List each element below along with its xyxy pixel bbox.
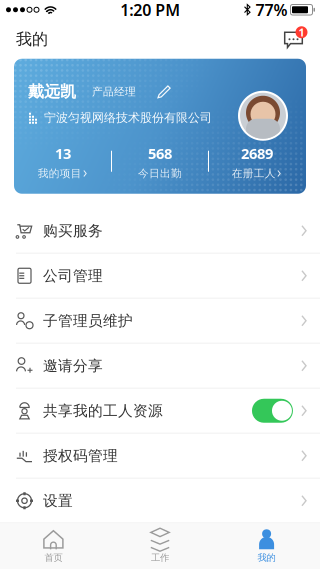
staticText: 1:20 PM [120, 0, 180, 20]
staticText: 1 [298, 25, 304, 39]
button[interactable]: 购买服务 [0, 209, 320, 253]
button[interactable]: 子管理员维护 [0, 299, 320, 343]
staticText: 我的项目 [38, 167, 82, 180]
staticText: 2689 [241, 143, 273, 163]
staticText: 共享我的工人资源 [43, 402, 163, 420]
button[interactable]: 邀请分享 [0, 344, 320, 388]
staticText: 邀请分享 [43, 357, 103, 375]
staticText: 产品经理 [92, 85, 136, 98]
button[interactable]: 工作 [107, 523, 213, 569]
button[interactable]: 568 [112, 141, 208, 183]
staticText: 我的 [258, 552, 276, 563]
staticText: 戴远凯 [28, 82, 76, 102]
staticText: 我的 [16, 29, 48, 49]
staticText: 77% [255, 0, 287, 20]
staticText: 购买服务 [43, 222, 103, 240]
staticText: 今日出勤 [138, 167, 182, 180]
staticText: 首页 [44, 552, 62, 563]
button[interactable]: 设置 [0, 479, 320, 523]
button[interactable]: 消息 [266, 24, 306, 54]
staticText: 公司管理 [43, 267, 103, 285]
button[interactable]: 2689 [209, 141, 305, 183]
staticText: 13 [55, 143, 71, 163]
staticText: 设置 [43, 492, 73, 510]
button[interactable]: 我的 [213, 523, 320, 569]
staticText: 工作 [151, 552, 169, 563]
button[interactable]: 首页 [0, 523, 107, 569]
staticText: 在册工人 [232, 167, 276, 180]
staticText: 宁波匀视网络技术股份有限公司 [44, 110, 212, 125]
staticText: 568 [148, 143, 172, 163]
staticText: 授权码管理 [43, 447, 118, 465]
staticText: 子管理员维护 [43, 312, 133, 330]
button[interactable]: 13 [15, 141, 111, 183]
button[interactable]: 授权码管理 [0, 434, 320, 478]
button[interactable]: 共享我的工人资源 [0, 389, 320, 433]
button[interactable]: 编辑资料 [154, 82, 174, 102]
button[interactable]: 公司管理 [0, 254, 320, 298]
